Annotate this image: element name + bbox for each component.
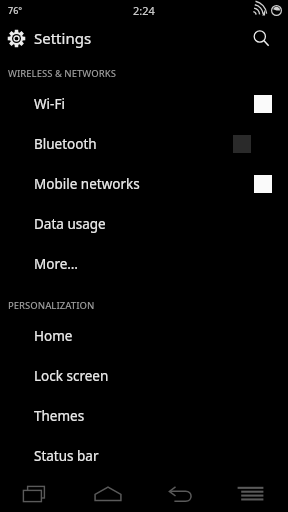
- staticText: Status bar: [34, 447, 99, 465]
- button[interactable]: Bluetooth: [0, 124, 288, 164]
- staticText: Bluetooth: [34, 135, 97, 153]
- staticText: 76°: [8, 4, 23, 16]
- button[interactable]: Search: [244, 21, 278, 55]
- button[interactable]: Lock screen: [0, 356, 288, 396]
- button[interactable]: More…: [0, 244, 288, 284]
- button[interactable]: Themes: [0, 396, 288, 436]
- staticText: Mobile networks: [34, 175, 140, 193]
- staticText: More…: [34, 255, 79, 273]
- staticText: Wi-Fi: [34, 95, 65, 113]
- staticText: Data usage: [34, 215, 106, 233]
- button[interactable]: Home: [72, 476, 144, 512]
- button[interactable]: Back: [144, 476, 216, 512]
- button[interactable]: Recents: [0, 476, 72, 512]
- button[interactable]: Mobile networks: [0, 164, 288, 204]
- button[interactable]: Menu: [216, 476, 288, 512]
- button[interactable]: Status bar: [0, 436, 288, 476]
- button[interactable]: Home: [0, 316, 288, 356]
- staticText: Themes: [34, 407, 85, 425]
- staticText: Home: [34, 327, 73, 345]
- button[interactable]: Data usage: [0, 204, 288, 244]
- button[interactable]: Wi-Fi: [0, 84, 288, 124]
- staticText: 2:24: [133, 3, 155, 18]
- staticText: Lock screen: [34, 367, 109, 385]
- staticText: WIRELESS & NETWORKS: [8, 67, 116, 80]
- staticText: Settings: [34, 28, 92, 48]
- staticText: PERSONALIZATION: [8, 299, 95, 312]
